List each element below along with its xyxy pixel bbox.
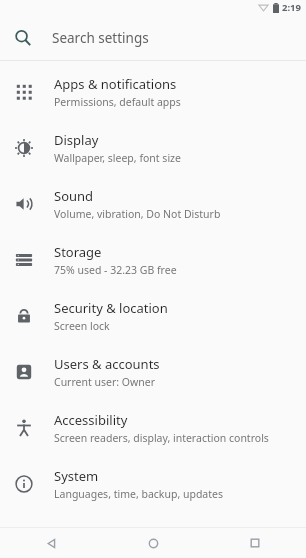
staticText: Display bbox=[54, 131, 99, 149]
staticText: Permissions, default apps bbox=[54, 95, 181, 109]
button[interactable]: Security & location bbox=[0, 288, 306, 344]
staticText: Users & accounts bbox=[54, 355, 160, 373]
staticText: 2:19 bbox=[282, 1, 301, 14]
staticText: Languages, time, backup, updates bbox=[54, 487, 223, 501]
button[interactable]: Home bbox=[102, 528, 204, 558]
staticText: Accessibility bbox=[54, 411, 128, 429]
staticText: Current user: Owner bbox=[54, 375, 156, 389]
button[interactable]: Apps & notifications bbox=[0, 64, 306, 120]
staticText: 75% used - 32.23 GB free bbox=[54, 263, 177, 277]
button[interactable]: Storage bbox=[0, 232, 306, 288]
button[interactable]: Recents bbox=[204, 528, 306, 558]
staticText: Volume, vibration, Do Not Disturb bbox=[54, 207, 221, 221]
staticText: Search settings bbox=[52, 29, 149, 47]
staticText: Screen readers, display, interaction con… bbox=[54, 431, 269, 445]
staticText: System bbox=[54, 467, 99, 485]
staticText: Sound bbox=[54, 187, 94, 205]
staticText: Apps & notifications bbox=[54, 75, 177, 93]
button[interactable]: Sound bbox=[0, 176, 306, 232]
staticText: Storage bbox=[54, 243, 102, 261]
staticText: Security & location bbox=[54, 299, 168, 317]
button[interactable]: Search settings bbox=[0, 15, 306, 60]
button[interactable]: System bbox=[0, 456, 306, 512]
button[interactable]: Accessibility bbox=[0, 400, 306, 456]
staticText: Screen lock bbox=[54, 319, 110, 333]
staticText: Wallpaper, sleep, font size bbox=[54, 151, 181, 165]
button[interactable]: Display bbox=[0, 120, 306, 176]
button[interactable]: Back bbox=[0, 528, 102, 558]
button[interactable]: Users & accounts bbox=[0, 344, 306, 400]
